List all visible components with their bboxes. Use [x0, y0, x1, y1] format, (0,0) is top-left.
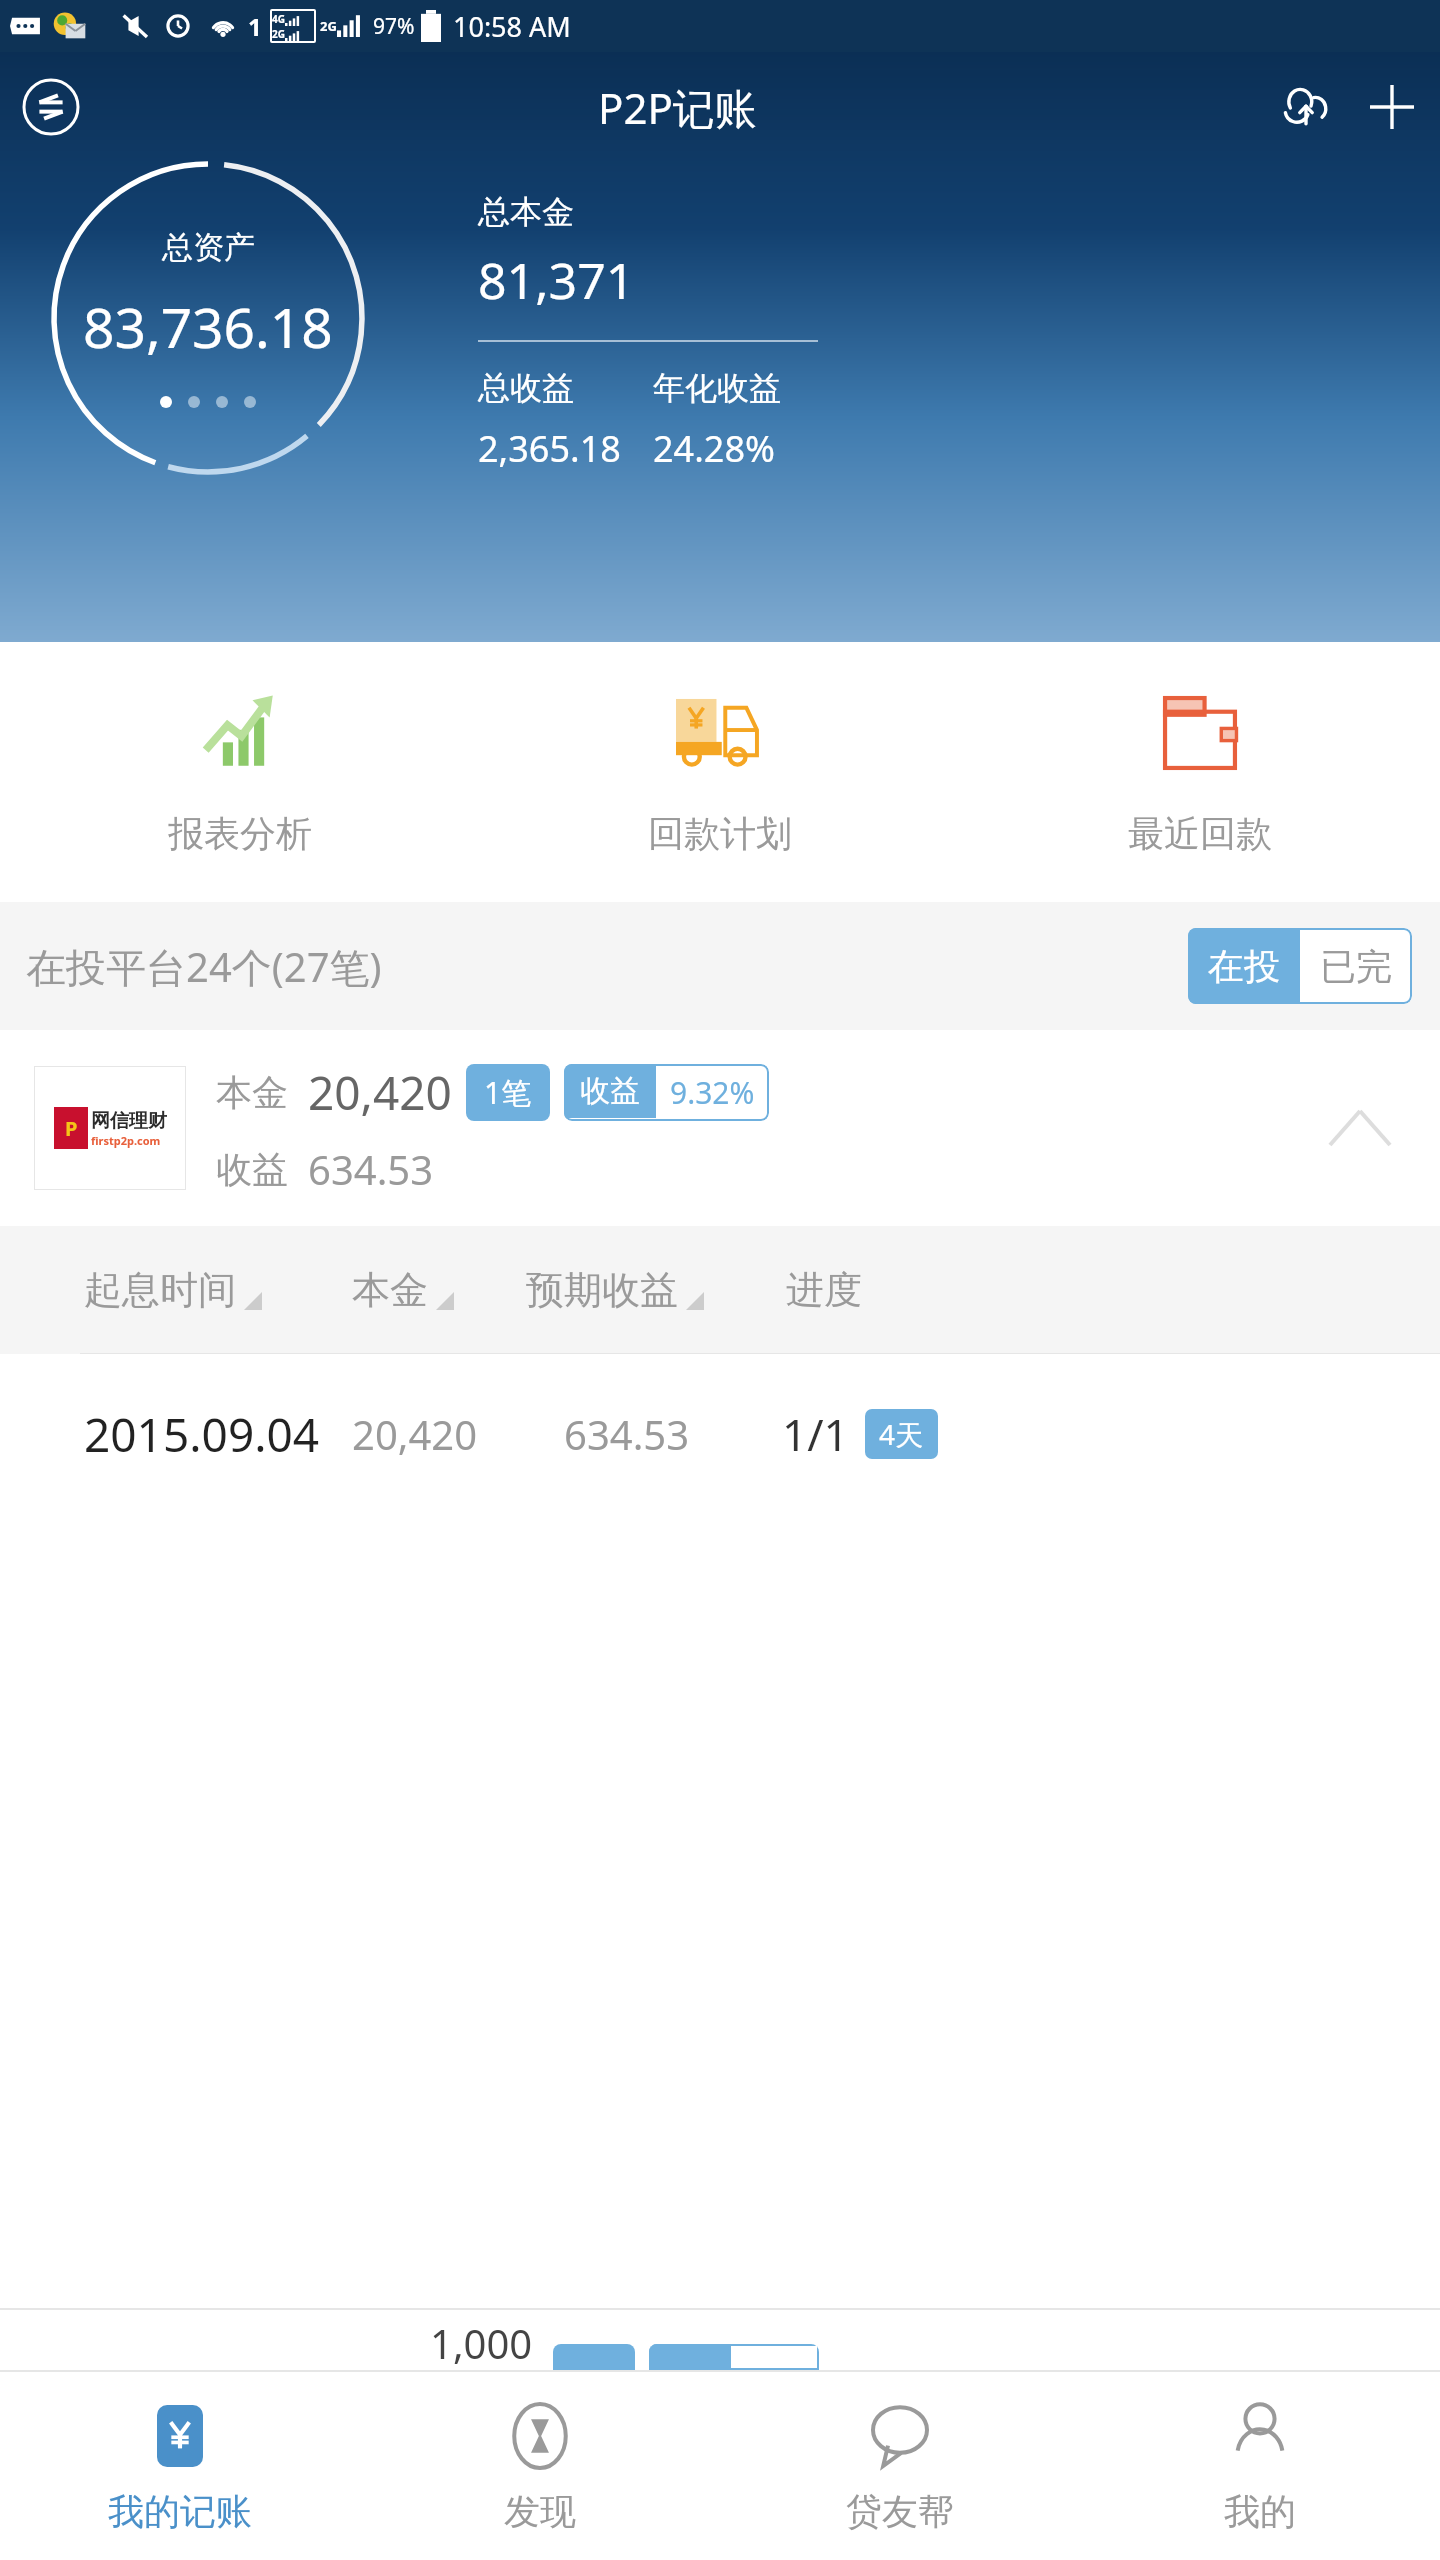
staticText: 83,736.18	[83, 289, 333, 364]
staticText: 24.28%	[653, 424, 775, 473]
staticText: 回款计划	[648, 811, 792, 856]
staticText: 1,000	[430, 2316, 533, 2370]
staticText: 9.32%	[670, 1072, 755, 1113]
staticText: 1/1	[782, 1404, 849, 1464]
staticText: 我的记账	[108, 2489, 252, 2534]
staticText: 起息时间	[84, 1266, 236, 1314]
staticText: 本金	[216, 1070, 288, 1115]
other: Collapse	[1330, 1111, 1390, 1145]
staticText: firstp2p.com	[91, 1133, 161, 1148]
staticText: P	[65, 1115, 78, 1142]
staticText: 4天	[879, 1415, 924, 1453]
staticText: 已完	[1320, 944, 1392, 989]
button[interactable]: 我的	[1080, 2372, 1440, 2560]
button[interactable]: 已完	[1300, 928, 1412, 1004]
button[interactable]: 我的记账	[0, 2372, 360, 2560]
staticText: 634.53	[308, 1142, 434, 1196]
button[interactable]: 发现	[360, 2372, 720, 2560]
staticText: 634.53	[564, 1407, 782, 1461]
button[interactable]: P	[0, 1030, 1440, 1226]
staticText: 网信理财	[91, 1109, 167, 1133]
staticText: 本金	[352, 1266, 428, 1314]
staticText: 总资产	[162, 228, 255, 267]
staticText: 最近回款	[1128, 811, 1272, 856]
button[interactable]: Sync to cloud	[1274, 75, 1338, 139]
staticText: 我的	[1224, 2489, 1296, 2534]
staticText: 年化收益	[653, 368, 781, 408]
staticText: 2015.09.04	[84, 1403, 352, 1466]
staticText: 1	[248, 10, 262, 43]
staticText: 报表分析	[168, 811, 312, 856]
staticText: 总收益	[478, 368, 653, 408]
staticText: 2G	[272, 27, 285, 41]
button[interactable]: 最近回款	[960, 642, 1440, 902]
staticText: 10:58 AM	[453, 8, 571, 45]
button[interactable]: 2015.09.04	[0, 1354, 1440, 1514]
staticText: 在投平台24个(27笔)	[26, 939, 382, 994]
button[interactable]: 贷友帮	[720, 2372, 1080, 2560]
button[interactable]: 回款计划	[480, 642, 960, 902]
button[interactable]: Switch account	[20, 76, 82, 138]
staticText: 进度	[786, 1266, 862, 1314]
staticText: 总本金	[478, 192, 574, 232]
staticText: 2G	[320, 17, 337, 35]
staticText: 发现	[504, 2489, 576, 2534]
staticText: 收益	[580, 1072, 640, 1110]
staticText: 2,365.18	[478, 424, 653, 473]
button[interactable]: Add record	[1364, 79, 1420, 135]
staticText: 81,371	[478, 246, 635, 314]
button[interactable]: 在投	[1188, 928, 1300, 1004]
staticText: P2P记账	[598, 79, 757, 136]
staticText: 在投	[1208, 944, 1280, 989]
staticText: 收益	[216, 1147, 288, 1192]
button[interactable]: 报表分析	[0, 642, 480, 902]
staticText: 贷友帮	[846, 2489, 954, 2534]
staticText: 4G	[272, 12, 285, 26]
staticText: 预期收益	[526, 1266, 678, 1314]
staticText: 20,420	[352, 1407, 564, 1461]
staticText: 20,420	[308, 1061, 452, 1124]
staticText: 97%	[373, 12, 415, 41]
staticText: 1笔	[484, 1072, 532, 1113]
